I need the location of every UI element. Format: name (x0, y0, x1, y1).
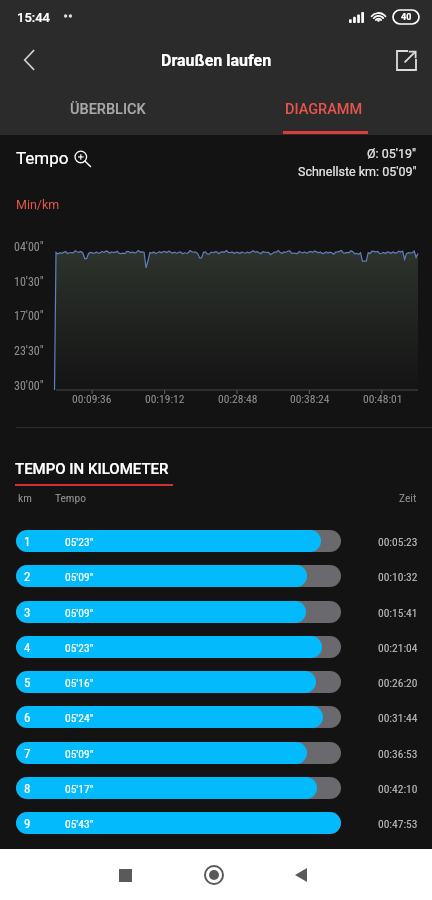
staticText: 10'30" (14, 275, 44, 289)
staticText: 9 (24, 816, 31, 831)
staticText: 00:31:44 (378, 711, 418, 724)
staticText: Tempo (16, 148, 69, 168)
staticText: 6 (24, 710, 31, 725)
staticText: 00:48:01 (363, 392, 403, 405)
staticText: 05'09" (65, 570, 94, 583)
button[interactable]: 9 (0, 811, 432, 835)
staticText: km (18, 491, 32, 504)
button[interactable]: 1 (0, 529, 432, 553)
staticText: 7 (24, 746, 31, 761)
staticText: 05'09" (65, 747, 94, 760)
staticText: Zeit (399, 491, 417, 504)
button[interactable]: 8 (0, 776, 432, 800)
staticText: 17'00" (14, 309, 44, 323)
staticText: 00:36:53 (378, 747, 418, 760)
staticText: 1 (24, 534, 31, 549)
staticText: 00:10:32 (378, 570, 418, 583)
button[interactable]: 7 (0, 741, 432, 765)
staticText: 00:15:41 (378, 606, 418, 619)
button[interactable]: Back (277, 851, 325, 899)
button[interactable]: 4 (0, 635, 432, 659)
staticText: 00:05:23 (378, 535, 418, 548)
button[interactable]: 6 (0, 705, 432, 729)
staticText: 23'30" (14, 344, 44, 358)
button[interactable]: Recent apps (101, 851, 149, 899)
staticText: 00:42:10 (378, 782, 418, 795)
staticText: 00:26:20 (378, 676, 418, 689)
staticText: Draußen laufen (161, 51, 272, 70)
button[interactable]: 5 (0, 670, 432, 694)
staticText: 00:19:12 (145, 392, 185, 405)
staticText: 8 (24, 781, 31, 796)
staticText: 3 (24, 605, 31, 620)
button[interactable]: ÜBERBLICK (0, 86, 216, 135)
staticText: 05'23" (65, 535, 94, 548)
staticText: ÜBERBLICK (70, 101, 146, 118)
staticText: DIAGRAMM (285, 101, 363, 118)
button[interactable]: Zoom in (74, 150, 91, 167)
button[interactable]: Back (0, 34, 52, 86)
staticText: 05'43" (65, 817, 94, 830)
staticText: Schnellste km: 05'09" (298, 164, 417, 179)
staticText: 05'24" (65, 711, 94, 724)
staticText: 05'09" (65, 606, 94, 619)
staticText: 00:47:53 (378, 817, 418, 830)
button[interactable]: 3 (0, 600, 432, 624)
button[interactable]: 2 (0, 564, 432, 588)
staticText: 15:44 (17, 10, 50, 25)
staticText: Ø: 05'19" (367, 146, 417, 161)
staticText: 05'17" (65, 782, 94, 795)
staticText: 04'00" (14, 240, 44, 254)
staticText: 00:38:24 (290, 392, 330, 405)
staticText: 4 (24, 640, 31, 655)
staticText: 00:28:48 (218, 392, 258, 405)
button[interactable]: Share (380, 34, 432, 86)
button[interactable]: DIAGRAMM (216, 86, 432, 135)
staticText: 05'23" (65, 641, 94, 654)
staticText: Tempo (55, 491, 86, 504)
staticText: 05'16" (65, 676, 94, 689)
staticText: Min/km (16, 197, 60, 212)
staticText: 5 (24, 675, 31, 690)
staticText: 2 (24, 569, 31, 584)
staticText: 40 (401, 12, 412, 23)
staticText: 30'00" (14, 379, 44, 393)
button[interactable]: Home (190, 851, 238, 899)
staticText: 00:21:04 (378, 641, 418, 654)
staticText: 00:09:36 (72, 392, 112, 405)
staticText: TEMPO IN KILOMETER (15, 460, 169, 478)
